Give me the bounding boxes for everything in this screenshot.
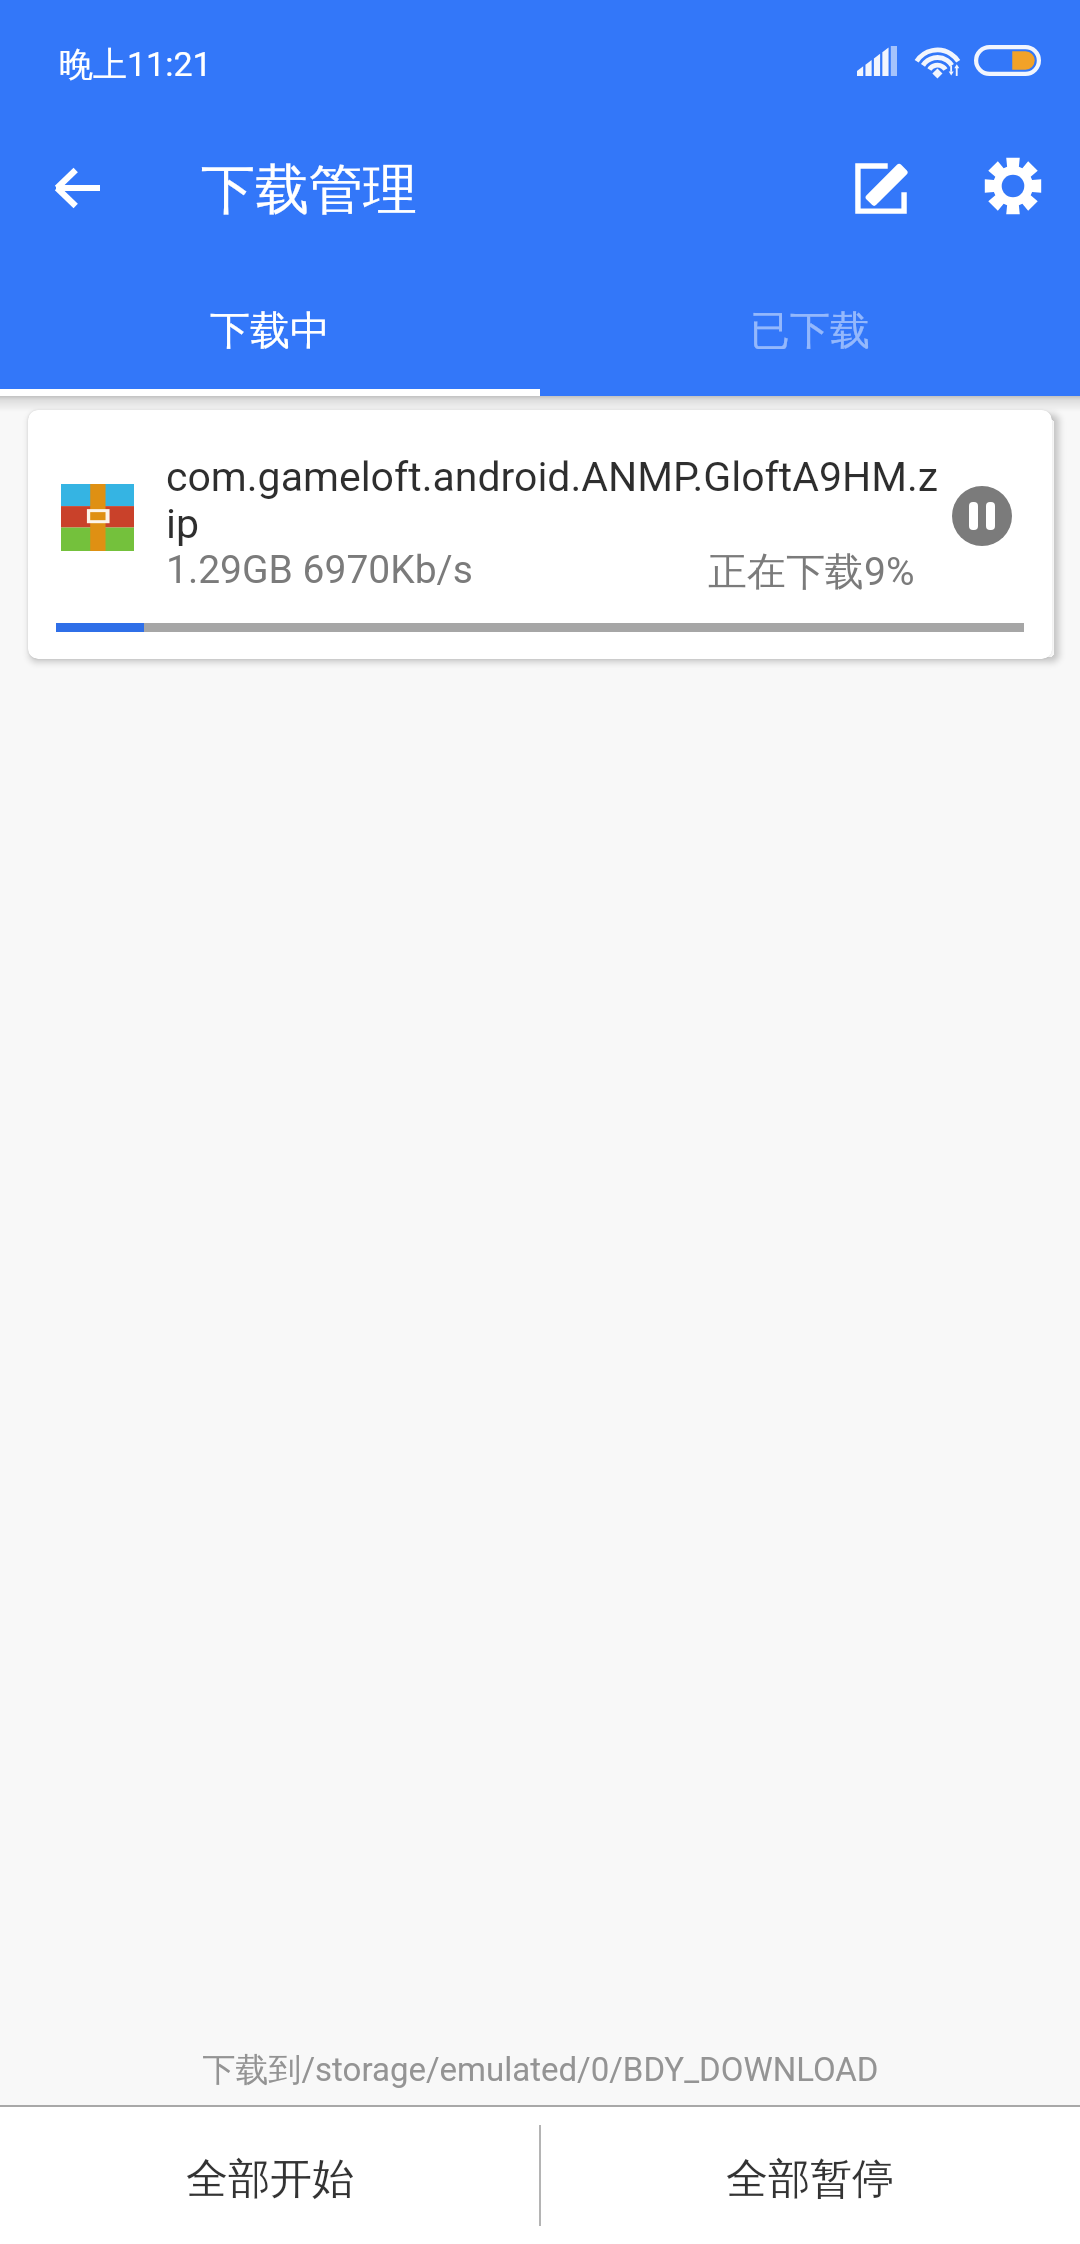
staticText: 晚上11:21 xyxy=(59,43,212,86)
staticText: 下载管理 xyxy=(201,156,417,224)
staticText: 1.29GB 6970Kb/s xyxy=(166,547,473,593)
button[interactable]: Back xyxy=(22,133,132,243)
staticText: 下载到/storage/emulated/0/BDY_DOWNLOAD xyxy=(202,2049,879,2091)
button[interactable]: Edit xyxy=(829,134,933,238)
button[interactable]: 已下载 xyxy=(540,278,1080,396)
staticText: 全部暂停 xyxy=(726,2153,894,2206)
staticText: 已下载 xyxy=(750,305,870,355)
staticText: 下载中 xyxy=(210,305,330,355)
staticText: 全部开始 xyxy=(186,2153,354,2206)
button[interactable]: 全部开始 xyxy=(0,2107,540,2244)
staticText: 正在下载9% xyxy=(708,547,915,596)
button[interactable]: Settings xyxy=(961,134,1065,238)
button[interactable]: 全部暂停 xyxy=(540,2107,1080,2244)
staticText: com.gameloft.android.ANMP.GloftA9HM.zip xyxy=(166,453,948,548)
button[interactable]: com.gameloft.android.ANMP.GloftA9HM.zip xyxy=(28,410,1052,659)
button[interactable]: Pause xyxy=(952,486,1012,546)
button[interactable]: 下载中 xyxy=(0,278,540,396)
